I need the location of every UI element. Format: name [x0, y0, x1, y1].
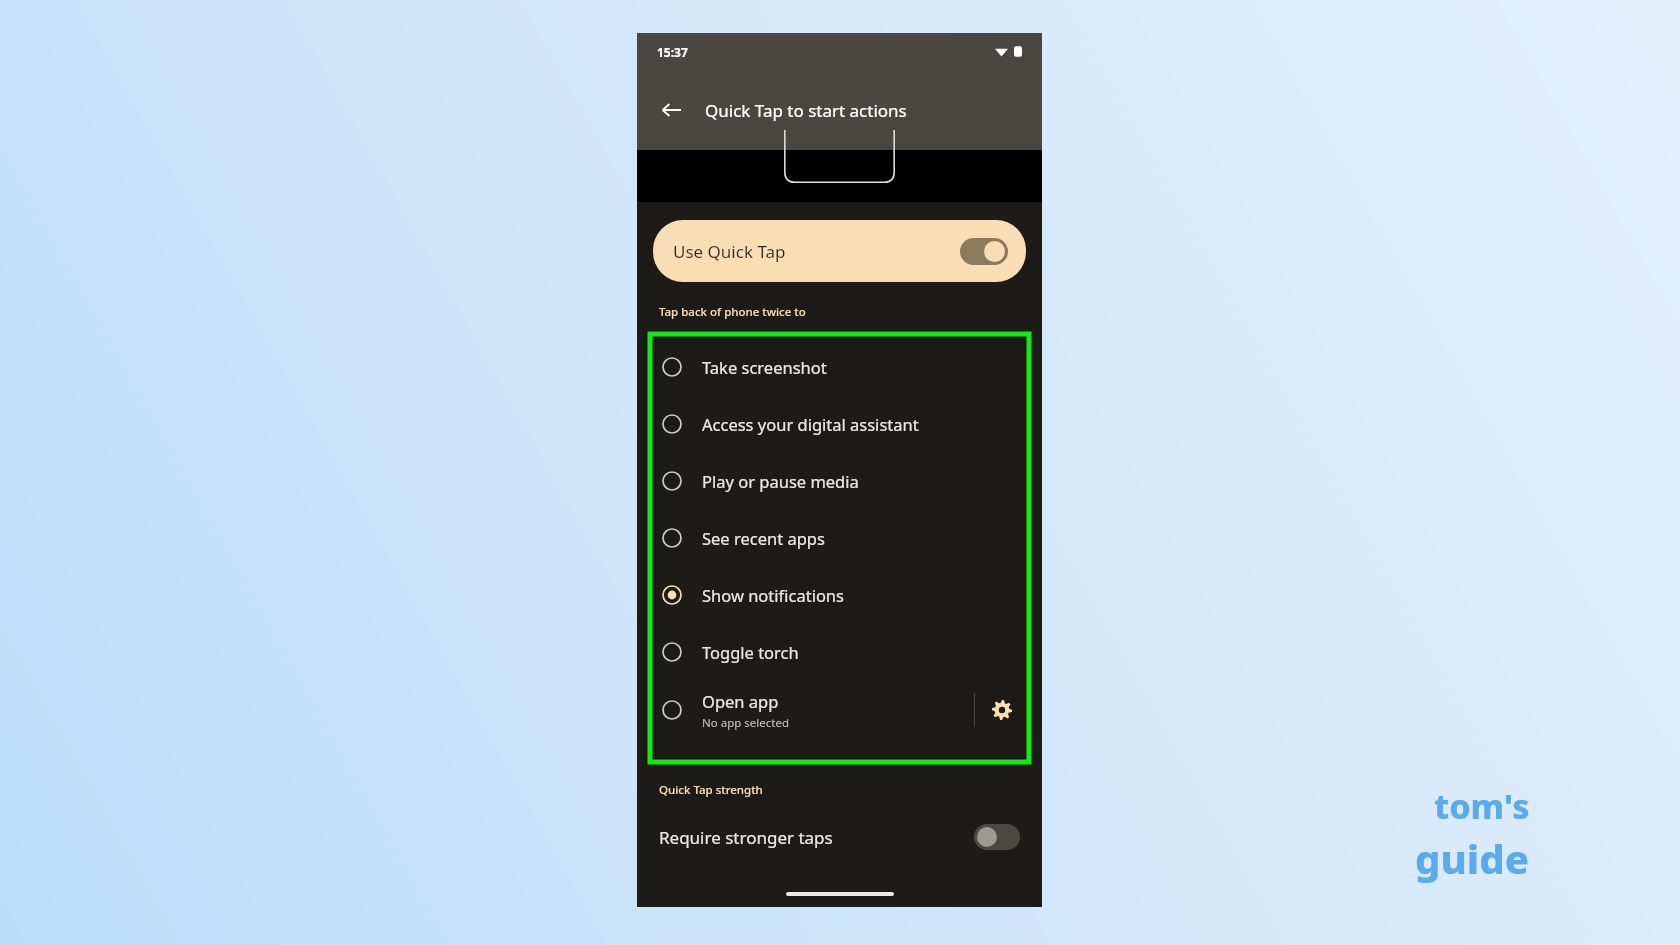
button[interactable]: Require stronger taps: [637, 814, 1042, 860]
staticText: See recent apps: [702, 527, 825, 549]
staticText: Quick Tap strength: [659, 782, 763, 798]
button[interactable]: See recent apps: [650, 509, 1029, 566]
staticText: Take screenshot: [702, 356, 827, 378]
button[interactable]: Back: [649, 88, 693, 132]
staticText: Play or pause media: [702, 470, 859, 492]
staticText: tom's: [1434, 783, 1530, 829]
staticText: Quick Tap to start actions: [705, 99, 907, 122]
button[interactable]: Toggle torch: [650, 623, 1029, 680]
staticText: Show notifications: [702, 584, 844, 606]
button[interactable]: Open app: [662, 680, 974, 740]
staticText: Tap back of phone twice to: [659, 304, 806, 320]
button[interactable]: Use Quick Tap: [653, 220, 1026, 282]
staticText: 15:37: [657, 44, 688, 60]
staticText: Open app: [702, 690, 779, 712]
staticText: Access your digital assistant: [702, 413, 919, 435]
button[interactable]: Access your digital assistant: [650, 395, 1029, 452]
staticText: Require stronger taps: [659, 826, 974, 849]
button[interactable]: Open app settings: [975, 680, 1029, 740]
button[interactable]: Require stronger taps toggle: [974, 824, 1020, 850]
staticText: Use Quick Tap: [673, 240, 786, 263]
staticText: guide: [1415, 831, 1530, 885]
staticText: Toggle torch: [702, 641, 799, 663]
button[interactable]: Play or pause media: [650, 452, 1029, 509]
staticText: No app selected: [702, 715, 789, 731]
button[interactable]: Use Quick Tap toggle: [960, 238, 1008, 265]
button[interactable]: Show notifications: [650, 566, 1029, 623]
button[interactable]: Take screenshot: [650, 338, 1029, 395]
